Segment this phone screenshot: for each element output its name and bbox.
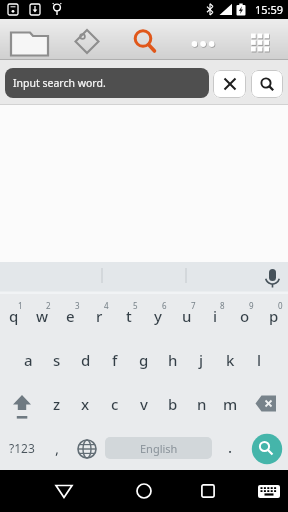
- staticText: 6: [162, 300, 167, 311]
- button[interactable]: [213, 70, 246, 98]
- button[interactable]: v: [129, 382, 158, 426]
- button[interactable]: [0, 19, 58, 60]
- button[interactable]: n: [187, 382, 216, 426]
- staticText: 8: [220, 300, 225, 311]
- button[interactable]: Input search word.: [5, 68, 209, 98]
- button[interactable]: t: [114, 294, 143, 338]
- staticText: i: [213, 306, 218, 326]
- button[interactable]: [174, 19, 232, 60]
- staticText: d: [81, 350, 91, 370]
- button[interactable]: z: [43, 382, 71, 426]
- button[interactable]: i: [201, 294, 230, 338]
- button[interactable]: [0, 382, 43, 426]
- staticText: .: [228, 437, 233, 457]
- staticText: l: [257, 350, 262, 370]
- button[interactable]: ,: [43, 426, 72, 470]
- staticText: t: [126, 306, 132, 326]
- button[interactable]: English: [101, 426, 216, 470]
- staticText: k: [226, 350, 235, 370]
- button[interactable]: q: [0, 294, 28, 338]
- button[interactable]: [245, 426, 288, 470]
- staticText: x: [81, 394, 90, 414]
- button[interactable]: w: [28, 294, 56, 338]
- staticText: 3: [75, 300, 80, 311]
- staticText: w: [36, 306, 49, 326]
- staticText: m: [223, 394, 238, 414]
- button[interactable]: y: [143, 294, 172, 338]
- staticText: 0: [278, 300, 283, 311]
- staticText: o: [240, 306, 250, 326]
- staticText: 1: [18, 300, 23, 311]
- staticText: b: [168, 394, 178, 414]
- staticText: f: [112, 350, 118, 370]
- button[interactable]: e: [56, 294, 85, 338]
- button[interactable]: m: [216, 382, 245, 426]
- button[interactable]: x: [71, 382, 100, 426]
- staticText: c: [111, 394, 119, 414]
- button[interactable]: s: [42, 338, 71, 382]
- staticText: q: [9, 306, 19, 326]
- staticText: y: [154, 306, 162, 326]
- button[interactable]: g: [129, 338, 158, 382]
- button[interactable]: r: [85, 294, 114, 338]
- button[interactable]: l: [245, 338, 274, 382]
- button[interactable]: [232, 19, 288, 60]
- button[interactable]: [116, 19, 174, 60]
- staticText: a: [24, 350, 33, 370]
- staticText: e: [66, 306, 75, 326]
- button[interactable]: [184, 470, 232, 512]
- staticText: English: [140, 441, 178, 456]
- button[interactable]: [58, 19, 116, 60]
- button[interactable]: [251, 70, 283, 98]
- staticText: z: [53, 394, 61, 414]
- button[interactable]: p: [259, 294, 288, 338]
- button[interactable]: [120, 470, 168, 512]
- staticText: v: [140, 394, 148, 414]
- staticText: ,: [55, 438, 60, 458]
- staticText: h: [168, 350, 178, 370]
- staticText: 15:59: [255, 2, 284, 17]
- staticText: 4: [104, 300, 109, 311]
- button[interactable]: a: [14, 338, 42, 382]
- staticText: r: [96, 306, 103, 326]
- button[interactable]: k: [216, 338, 245, 382]
- button[interactable]: [40, 470, 88, 512]
- staticText: 2: [46, 300, 51, 311]
- staticText: 5: [133, 300, 138, 311]
- button[interactable]: h: [158, 338, 187, 382]
- staticText: s: [53, 350, 61, 370]
- button[interactable]: [72, 426, 101, 470]
- staticText: j: [199, 350, 204, 370]
- staticText: g: [139, 350, 149, 370]
- button[interactable]: [245, 382, 288, 426]
- button[interactable]: c: [100, 382, 129, 426]
- button[interactable]: f: [100, 338, 129, 382]
- button[interactable]: j: [187, 338, 216, 382]
- staticText: p: [269, 306, 279, 326]
- button[interactable]: .: [216, 426, 245, 470]
- staticText: u: [182, 306, 192, 326]
- staticText: 9: [249, 300, 254, 311]
- button[interactable]: o: [230, 294, 259, 338]
- button[interactable]: [258, 485, 280, 498]
- button[interactable]: b: [158, 382, 187, 426]
- button[interactable]: ?123: [0, 426, 43, 470]
- button[interactable]: d: [71, 338, 100, 382]
- staticText: 7: [191, 300, 196, 311]
- button[interactable]: u: [172, 294, 201, 338]
- staticText: ?123: [9, 440, 35, 456]
- staticText: Input search word.: [13, 76, 106, 90]
- staticText: n: [197, 394, 207, 414]
